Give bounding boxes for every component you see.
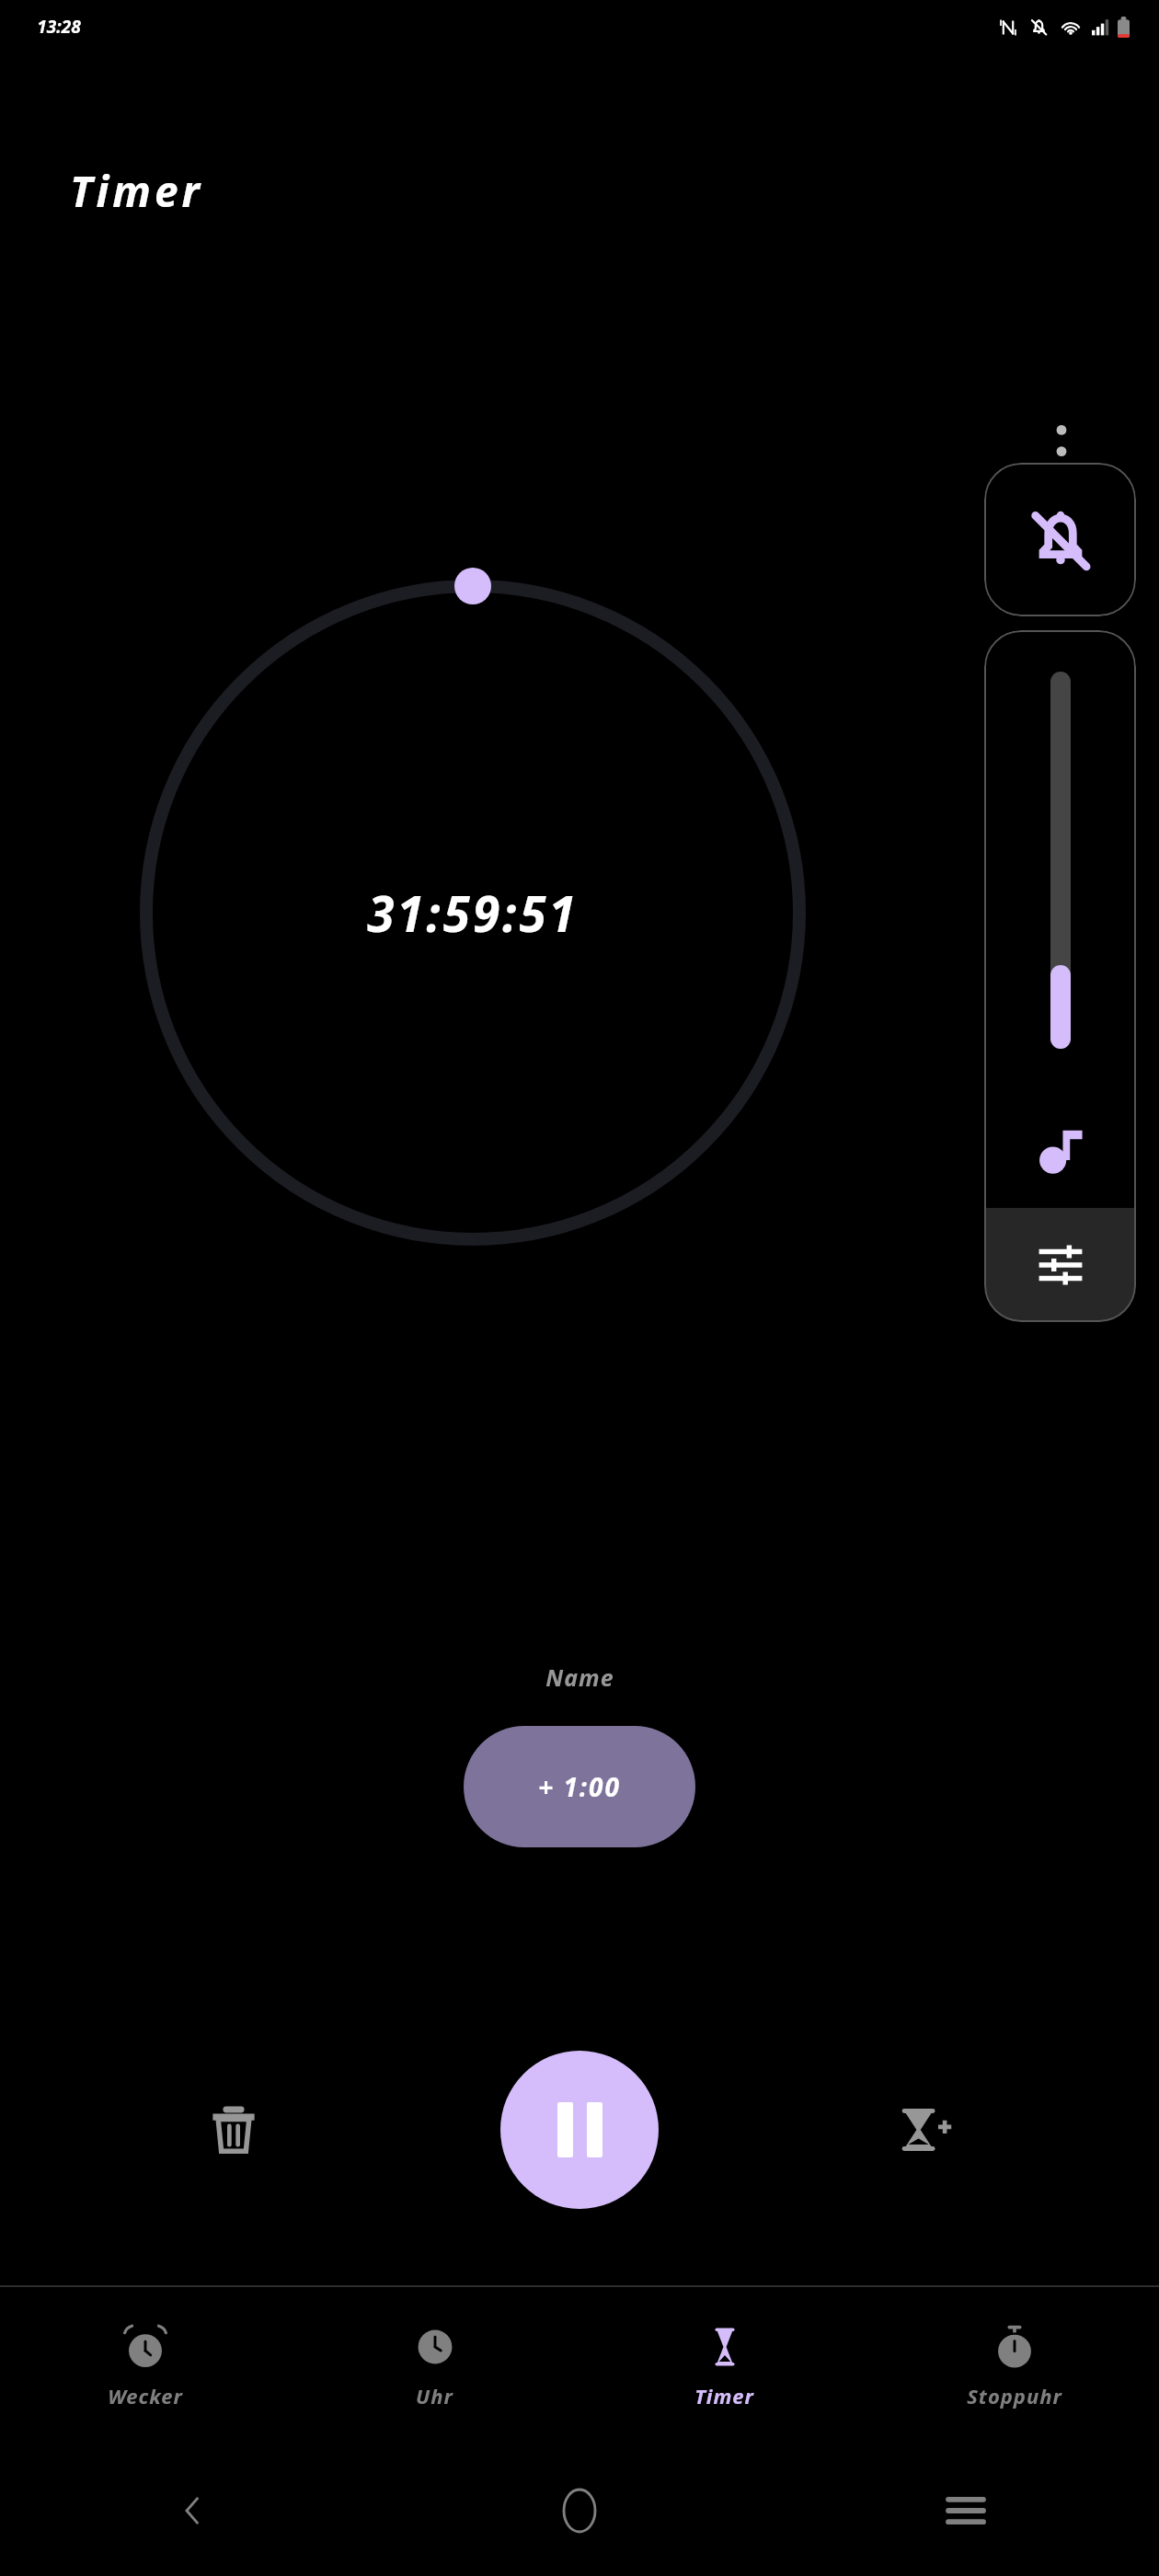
button[interactable]: Uhr — [290, 2287, 579, 2445]
button[interactable]: Stoppuhr — [869, 2287, 1159, 2445]
button[interactable]: Sound settings — [984, 1208, 1136, 1322]
staticText: 13:28 — [37, 15, 81, 39]
button[interactable]: Silence alarm — [984, 463, 1136, 616]
button[interactable]: Wecker — [0, 2287, 290, 2445]
button[interactable]: Timer — [579, 2287, 869, 2445]
button[interactable]: Recent apps — [773, 2445, 1159, 2576]
button[interactable]: Add timer — [874, 2078, 977, 2181]
button[interactable]: Volume — [984, 630, 1136, 1090]
staticText: Timer — [70, 162, 203, 220]
button[interactable]: Home — [386, 2445, 773, 2576]
button[interactable]: Delete timer — [182, 2078, 285, 2181]
staticText: Timer — [694, 2382, 754, 2409]
button[interactable]: Pause timer — [500, 2051, 659, 2209]
staticText: 31:59:51 — [367, 880, 579, 946]
staticText: + 1:00 — [538, 1769, 621, 1804]
button[interactable]: + 1:00 — [464, 1726, 695, 1847]
staticText: Stoppuhr — [967, 2382, 1062, 2409]
staticText: Uhr — [416, 2382, 453, 2409]
button[interactable]: Name — [545, 1662, 614, 1693]
button[interactable]: Back — [0, 2445, 386, 2576]
staticText: Wecker — [108, 2382, 183, 2409]
button[interactable]: Alarm sound — [984, 1090, 1136, 1208]
